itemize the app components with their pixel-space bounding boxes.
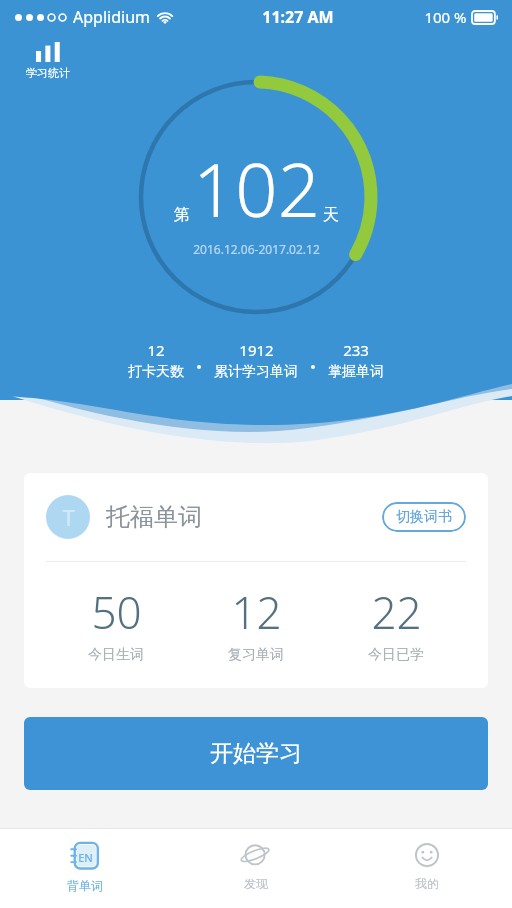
staticText: 12 [147,340,165,360]
staticText: 切换词书 [396,508,452,526]
button[interactable]: 开始学习 [24,717,488,790]
other: 我的 [412,841,442,871]
staticText: 今日已学 [368,646,424,664]
staticText: T [62,502,75,532]
button[interactable]: 22 [326,582,466,664]
staticText: 开始学习 [210,739,302,768]
staticText: 掌握单词 [328,363,384,381]
staticText: 学习统计 [26,66,70,80]
button[interactable]: 切换词书 [382,502,466,532]
staticText: 22 [371,582,422,642]
staticText: Applidium [73,6,150,28]
button[interactable]: 学习统计 [22,40,74,82]
staticText: 背单词 [67,878,103,893]
staticText: 我的 [415,876,439,891]
staticText: 100 % [424,7,467,27]
staticText: 11:27 AM [262,6,334,28]
staticText: 发现 [244,876,268,891]
other: 背单词 [69,841,101,873]
staticText: 今日生词 [88,646,144,664]
staticText: 50 [91,582,142,642]
staticText: 托福单词 [106,502,202,532]
button[interactable]: 我的 [341,829,512,908]
staticText: EN [78,850,93,865]
staticText: 102 [193,138,320,239]
staticText: 天 [323,205,339,225]
button[interactable]: 背单词 [0,829,170,908]
other: 发现 [241,841,271,871]
button[interactable]: 12 [186,582,326,664]
staticText: 2016.12.06-2017.02.12 [193,241,320,257]
staticText: 1912 [239,340,274,360]
button[interactable]: 50 [46,582,186,664]
staticText: 打卡天数 [128,363,184,381]
staticText: 12 [231,582,282,642]
staticText: 复习单词 [228,646,284,664]
staticText: 累计学习单词 [214,363,298,381]
button[interactable]: 发现 [170,829,341,908]
button[interactable]: T [24,473,488,688]
staticText: 第 [174,205,190,225]
staticText: 233 [343,340,369,360]
